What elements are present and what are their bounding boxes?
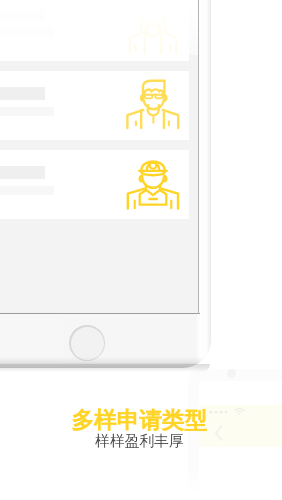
staticText: 多样申请类型 bbox=[71, 406, 207, 434]
button[interactable]: Back bbox=[212, 424, 228, 440]
button[interactable] bbox=[0, 71, 189, 140]
button[interactable] bbox=[0, 150, 189, 219]
staticText: 样样盈利丰厚 bbox=[95, 432, 184, 451]
button[interactable]: Home bbox=[69, 325, 105, 361]
